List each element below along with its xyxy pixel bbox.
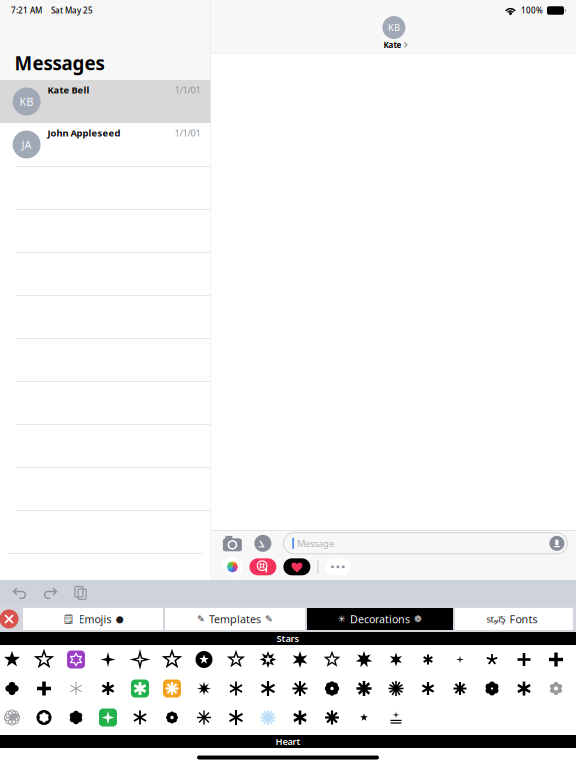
button[interactable]: Sticker [188, 674, 220, 703]
button[interactable]: Sticker [60, 674, 92, 703]
button[interactable]: KB [0, 80, 211, 123]
button[interactable]: Sticker [444, 674, 476, 703]
button[interactable]: Sticker [444, 645, 476, 674]
button[interactable]: Sticker [0, 674, 28, 703]
button[interactable]: Sticker [0, 645, 28, 674]
staticText: ● [115, 614, 123, 624]
button[interactable]: Sticker [28, 674, 60, 703]
button[interactable]: Sticker [380, 645, 412, 674]
button[interactable]: Undo [12, 586, 27, 599]
staticText: Stars [276, 632, 299, 645]
staticText: John Appleseed [48, 127, 121, 139]
button[interactable]: Sticker [124, 703, 156, 732]
button[interactable]: Sticker [476, 645, 508, 674]
button[interactable]: Redo [43, 586, 58, 599]
button[interactable]: Sticker [284, 674, 316, 703]
button[interactable]: KB [211, 0, 576, 53]
button[interactable]: Sticker [348, 645, 380, 674]
staticText: KB [20, 94, 34, 109]
button[interactable]: Sticker [124, 645, 156, 674]
staticText: Heart [275, 735, 300, 748]
button[interactable]: Message [283, 533, 567, 554]
button[interactable]: Sticker [284, 703, 316, 732]
button[interactable]: Sticker [540, 674, 572, 703]
staticText: ✎ [265, 614, 273, 624]
staticText: 1/1/01 [175, 127, 201, 139]
button[interactable]: ✎ [165, 608, 305, 630]
staticText: ❁ [414, 614, 422, 624]
button[interactable]: Sticker [156, 645, 188, 674]
button[interactable]: More apps [325, 558, 350, 575]
button[interactable]: Sticker [348, 703, 380, 732]
staticText: Messages [15, 51, 105, 75]
button[interactable]: Sticker [124, 674, 156, 703]
button[interactable]: Sticker [220, 703, 252, 732]
staticText: Sat May 25 [51, 5, 93, 16]
button[interactable]: Sticker [348, 674, 380, 703]
button[interactable]: Sticker [252, 674, 284, 703]
staticText: Emojis [78, 612, 111, 626]
staticText: Decorations [350, 612, 410, 626]
button[interactable]: Sticker [252, 645, 284, 674]
staticText: KB [388, 21, 400, 34]
button[interactable]: Sticker [476, 674, 508, 703]
button[interactable]: Images [249, 558, 276, 575]
button[interactable]: Sticker [252, 703, 284, 732]
staticText: Fonts [509, 612, 537, 626]
button[interactable]: 🗒 [23, 608, 163, 630]
button[interactable]: Sticker [156, 674, 188, 703]
button[interactable]: Sticker [156, 703, 188, 732]
button[interactable]: Sticker [380, 674, 412, 703]
button[interactable]: Sticker [188, 703, 220, 732]
button[interactable]: Sticker [508, 645, 540, 674]
button[interactable]: ✳ [307, 608, 453, 630]
button[interactable]: Sticker [28, 703, 60, 732]
button[interactable]: Paste [74, 586, 87, 599]
staticText: st𝓎īŞ [486, 613, 505, 625]
button[interactable]: Sticker [412, 645, 444, 674]
button[interactable]: Sticker [0, 703, 28, 732]
button[interactable]: Sticker [316, 674, 348, 703]
staticText: JA [22, 137, 32, 152]
staticText: ✎ [197, 614, 205, 624]
button[interactable]: Sticker [284, 645, 316, 674]
button[interactable]: Sticker [316, 703, 348, 732]
button[interactable]: Sticker [540, 645, 572, 674]
button[interactable]: Sticker [380, 703, 412, 732]
button[interactable]: Sticker [188, 645, 220, 674]
button[interactable]: Sticker [60, 645, 92, 674]
staticText: Templates [209, 612, 261, 626]
staticText: Kate Bell [48, 84, 90, 96]
button[interactable]: Sticker [92, 674, 124, 703]
button[interactable]: Digital Touch [283, 558, 310, 575]
staticText: 🗒 [62, 614, 74, 624]
staticText: Message [297, 537, 334, 550]
button[interactable]: Take photo [222, 534, 242, 553]
staticText: ✳ [338, 614, 346, 624]
button[interactable]: Sticker [508, 674, 540, 703]
button[interactable]: Sticker [220, 674, 252, 703]
button[interactable]: App Store [253, 534, 272, 553]
staticText: 100% [521, 5, 543, 16]
staticText: 1/1/01 [175, 84, 201, 96]
staticText: Kate [383, 40, 401, 50]
button[interactable]: Sticker [92, 645, 124, 674]
button[interactable]: Sticker [60, 703, 92, 732]
button[interactable]: Sticker [412, 674, 444, 703]
button[interactable]: Close [0, 606, 23, 632]
button[interactable]: Sticker [316, 645, 348, 674]
button[interactable]: Sticker [28, 645, 60, 674]
button[interactable]: JA [0, 123, 211, 166]
button[interactable]: Sticker [92, 703, 124, 732]
button[interactable]: Photos [222, 557, 242, 577]
button[interactable]: Sticker [220, 645, 252, 674]
button[interactable]: st𝓎īŞ [455, 608, 573, 630]
staticText: 7:21 AM [11, 5, 42, 16]
